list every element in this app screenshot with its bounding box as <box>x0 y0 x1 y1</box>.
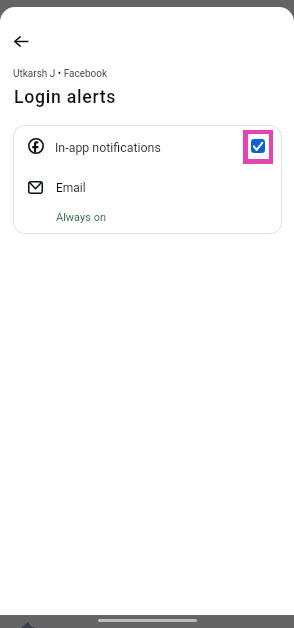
staticText: Utkarsh J • Facebook <box>13 68 108 80</box>
button[interactable]: Email <box>14 167 283 224</box>
staticText: Email <box>56 181 86 195</box>
staticText: Login alerts <box>14 87 117 108</box>
staticText: In-app notifications <box>55 140 161 155</box>
button[interactable]: In-app notifications <box>14 126 242 167</box>
staticText: Always on <box>56 211 106 224</box>
button[interactable]: Back <box>1 21 41 61</box>
button[interactable]: In-app notifications, checked <box>243 130 273 164</box>
